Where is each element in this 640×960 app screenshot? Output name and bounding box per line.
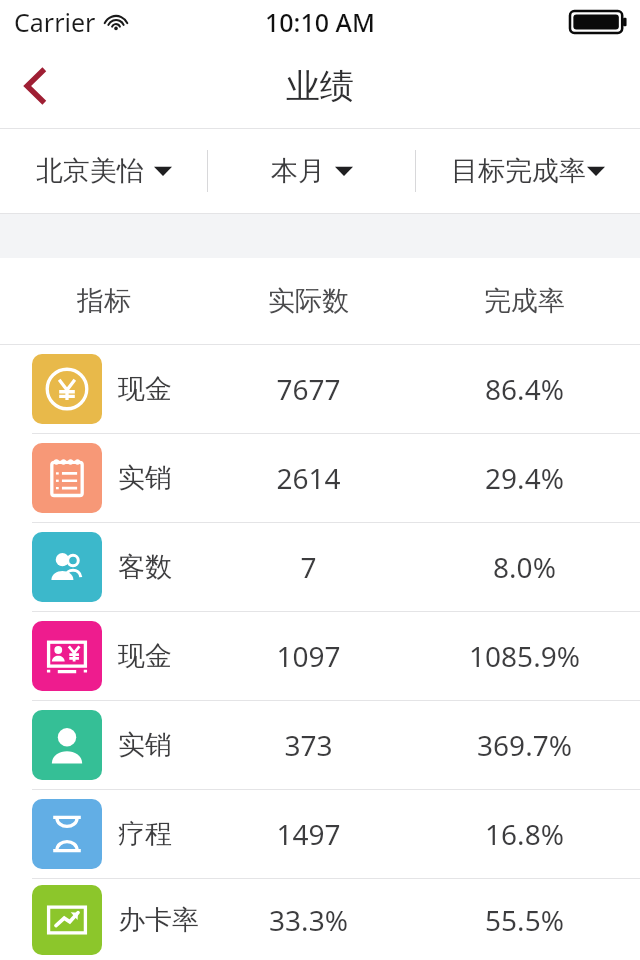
- button[interactable]: 现金客…: [0, 612, 640, 700]
- staticText: 7677: [276, 370, 341, 408]
- button[interactable]: 现金: [0, 345, 640, 433]
- staticText: 33.3%: [269, 901, 348, 939]
- button[interactable]: Back: [0, 44, 72, 128]
- button[interactable]: 实销客…: [0, 701, 640, 789]
- button[interactable]: 办卡率: [0, 879, 640, 960]
- button[interactable]: 目标完成率: [416, 129, 640, 213]
- button[interactable]: 客数: [0, 523, 640, 611]
- staticText: 16.8%: [485, 815, 564, 853]
- staticText: 指标: [77, 284, 131, 318]
- button[interactable]: 本月: [208, 129, 415, 213]
- staticText: 29.4%: [485, 459, 564, 497]
- staticText: 业绩: [286, 65, 354, 108]
- staticText: 现金客…: [118, 639, 208, 673]
- staticText: 实际数: [268, 284, 349, 318]
- staticText: 373: [284, 726, 333, 764]
- staticText: 本月: [271, 154, 325, 188]
- staticText: 55.5%: [485, 901, 564, 939]
- staticText: 2614: [276, 459, 341, 497]
- staticText: 369.7%: [477, 726, 572, 764]
- staticText: 1085.9%: [469, 637, 580, 675]
- staticText: 7: [300, 548, 317, 586]
- staticText: 客数: [118, 550, 172, 584]
- staticText: Carrier: [14, 5, 96, 39]
- staticText: 实销客…: [118, 728, 208, 762]
- staticText: 8.0%: [493, 548, 556, 586]
- staticText: 10:10 AM: [265, 5, 375, 39]
- staticText: 北京美怡: [36, 154, 144, 188]
- button[interactable]: 疗程销…: [0, 790, 640, 878]
- staticText: 现金: [118, 372, 172, 406]
- staticText: 完成率: [484, 284, 565, 318]
- staticText: 86.4%: [485, 370, 564, 408]
- staticText: 实销: [118, 461, 172, 495]
- staticText: 1097: [276, 637, 341, 675]
- button[interactable]: 实销: [0, 434, 640, 522]
- staticText: 1497: [276, 815, 341, 853]
- button[interactable]: 北京美怡: [0, 129, 207, 213]
- staticText: 疗程销…: [118, 817, 208, 851]
- staticText: 目标完成率: [451, 154, 586, 188]
- staticText: 办卡率: [118, 903, 199, 937]
